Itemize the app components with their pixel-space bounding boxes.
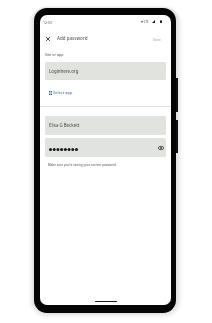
button[interactable]: Show password	[156, 143, 165, 152]
staticText: Elisa G Beckett	[49, 122, 80, 128]
button[interactable]: Select app	[49, 90, 73, 95]
staticText: 12:00	[43, 20, 53, 25]
staticText: Loginhere.org	[49, 68, 79, 74]
staticText: LTE	[144, 20, 149, 24]
staticText: Save	[153, 37, 161, 42]
button[interactable]: Show password	[45, 138, 166, 157]
staticText: Site or app	[45, 52, 64, 57]
button[interactable]: Loginhere.org	[45, 62, 166, 80]
button[interactable]: Elisa G Beckett	[45, 116, 166, 135]
staticText: Add password	[57, 35, 88, 41]
staticText: Make sure you're saving your current pas…	[48, 163, 116, 167]
button[interactable]: Save	[151, 35, 163, 44]
staticText: Select app	[53, 90, 73, 95]
button[interactable]: Close	[41, 32, 54, 45]
